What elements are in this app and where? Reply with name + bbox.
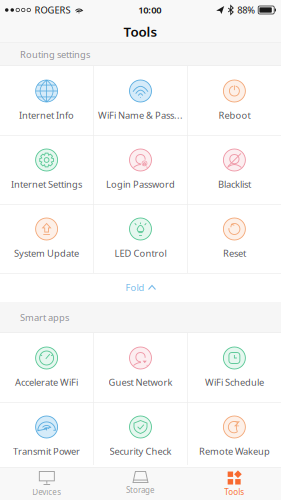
button[interactable]: Storage <box>94 467 187 499</box>
button[interactable]: WiFi Name & Pass... <box>94 66 187 135</box>
button[interactable]: Internet Settings <box>0 135 93 204</box>
button[interactable]: Login Password <box>94 135 187 204</box>
button[interactable]: LED Control <box>94 204 187 273</box>
staticText: 10:00 <box>138 4 161 16</box>
staticText: Login Password <box>106 178 175 190</box>
button[interactable]: Transmit Power <box>0 402 93 465</box>
staticText: Internet Settings <box>11 178 82 190</box>
button[interactable]: Accelerate WiFi <box>0 333 93 402</box>
button[interactable]: Fold <box>0 273 281 302</box>
staticText: WiFi Name & Pass... <box>98 109 183 121</box>
staticText: Tools <box>224 486 244 497</box>
button[interactable]: Reboot <box>188 66 281 135</box>
staticText: Accelerate WiFi <box>15 376 78 388</box>
staticText: Storage <box>126 484 155 495</box>
staticText: Reset <box>223 247 246 259</box>
staticText: Security Check <box>109 445 171 457</box>
button[interactable]: WiFi Schedule <box>188 333 281 402</box>
staticText: WiFi Schedule <box>205 376 264 388</box>
staticText: System Update <box>14 247 79 259</box>
button[interactable]: Blacklist <box>188 135 281 204</box>
staticText: Fold <box>125 281 144 294</box>
button[interactable]: System Update <box>0 204 93 273</box>
button[interactable]: Devices <box>0 467 94 499</box>
button[interactable]: Tools <box>187 467 281 499</box>
staticText: Guest Network <box>108 376 172 388</box>
staticText: Smart apps <box>20 311 69 324</box>
staticText: Internet Info <box>19 109 74 121</box>
staticText: Blacklist <box>218 178 251 190</box>
staticText: LED Control <box>114 247 166 259</box>
staticText: Transmit Power <box>13 445 80 457</box>
button[interactable]: Remote Wakeup <box>188 402 281 465</box>
button[interactable]: Reset <box>188 204 281 273</box>
button[interactable]: Internet Info <box>0 66 93 135</box>
staticText: Remote Wakeup <box>199 445 270 457</box>
staticText: Tools <box>123 23 157 40</box>
staticText: 88% <box>237 4 255 16</box>
button[interactable]: Security Check <box>94 402 187 465</box>
button[interactable]: Guest Network <box>94 333 187 402</box>
staticText: Reboot <box>218 109 250 121</box>
staticText: Routing settings <box>20 48 90 61</box>
staticText: Devices <box>32 486 61 497</box>
staticText: ROGERS <box>34 4 70 16</box>
